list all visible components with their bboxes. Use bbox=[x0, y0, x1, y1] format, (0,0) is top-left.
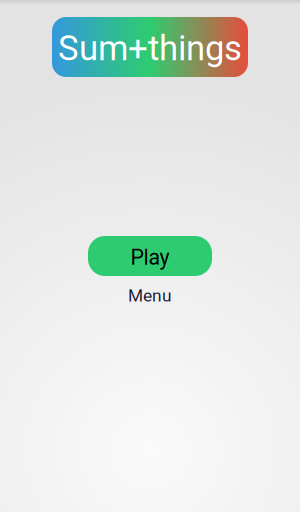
staticText: Play bbox=[130, 245, 169, 270]
staticText: Menu bbox=[128, 285, 172, 306]
staticText: Sum+things bbox=[58, 28, 242, 69]
button[interactable]: Menu bbox=[88, 276, 212, 315]
button[interactable]: Play bbox=[88, 236, 212, 276]
